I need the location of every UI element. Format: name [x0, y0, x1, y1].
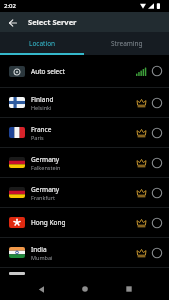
staticText: Paris [31, 134, 44, 141]
staticText: India [31, 245, 47, 254]
staticText: Streaming [111, 39, 143, 48]
staticText: Helsinki [31, 104, 52, 111]
staticText: 2:02 [4, 2, 16, 10]
button[interactable]: Hong Kong [0, 208, 169, 237]
button[interactable]: Germany [0, 178, 169, 207]
staticText: Finland [31, 95, 54, 104]
button[interactable] [31, 279, 51, 299]
button[interactable]: Auto select [0, 55, 169, 87]
button[interactable]: Location [0, 32, 84, 55]
staticText: Mumbai [31, 254, 53, 261]
staticText: Falkenstein [31, 164, 61, 171]
button[interactable] [119, 279, 139, 299]
button[interactable] [3, 13, 22, 32]
staticText: Hong Kong [31, 218, 66, 227]
staticText: Auto select [31, 67, 65, 76]
button[interactable]: Finland [0, 88, 169, 117]
button[interactable]: France [0, 118, 169, 147]
staticText: France [31, 125, 52, 134]
button[interactable]: Streaming [84, 32, 169, 55]
staticText: Select Server [28, 17, 77, 27]
staticText: Frankfurt [31, 194, 55, 201]
button[interactable]: India [0, 238, 169, 267]
staticText: Germany [31, 155, 60, 164]
button[interactable]: Germany [0, 148, 169, 177]
staticText: Location [29, 39, 56, 48]
button[interactable] [75, 279, 95, 299]
staticText: Germany [31, 185, 60, 194]
